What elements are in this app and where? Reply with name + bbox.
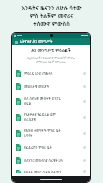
staticText: ሕገ መንግሥቱ ምዕራፎች — [12, 48, 90, 54]
button[interactable]: ምዕራፍ አንድ ጠቅላላ — [12, 67, 90, 80]
staticText: ክፍል — [24, 101, 32, 106]
staticText: እንዴትና ዜናንን ለሁሉ ሳተው — [6, 4, 97, 12]
staticText: የክልል ምክር ቤቶች ስልጣን — [24, 170, 62, 173]
staticText: መሠረታዊ መርሆች — [24, 84, 50, 89]
staticText: ተሰሙኛ ምውስስ — [6, 20, 97, 28]
button[interactable]: መሠረታዊ መርሆች — [12, 80, 90, 93]
button[interactable]: የክልል ምክር ቤቶች ስልጣን — [12, 167, 90, 176]
staticText: አባላት — [24, 133, 33, 138]
button[interactable]: የሕዝብ ተወካዮች ምክር ቤት — [12, 125, 90, 141]
staticText: የፌዴሬሽን ምክር ቤት — [24, 145, 52, 150]
staticText: ኢትዮጵያ ሕገ መንግሥት — [20, 39, 53, 44]
staticText: ስለ ሰብአዊ መብቶች ድንጋጌ — [24, 96, 61, 101]
button[interactable]: Open navigation menu — [14, 40, 18, 44]
staticText: የሕዝብ ተወካዮች ምክር ቤት — [24, 128, 61, 133]
button[interactable]: ስለሃገር መከላከያ ሰራዊት ሀላ — [12, 154, 90, 167]
button[interactable]: የፌዴሬሽን ምክር ቤት — [12, 141, 90, 154]
button[interactable]: የኢትዮጵያ የፌዴራል ዴሞ — [12, 109, 90, 125]
staticText: ክራሲያዊ — [24, 117, 36, 122]
staticText: የኢትዮጵያ የፌዴራል ዴሞ — [24, 112, 56, 117]
staticText: ስለሃገር መከላከያ ሰራዊት ሀላ — [24, 158, 63, 163]
staticText: ከዚህ በታች የተዘረዘሩት ምዕራፎች ናቸው። ለማንበብ ከታች ይምረ… — [12, 56, 90, 64]
staticText: ምስ ትልቹም መኖሪና — [6, 12, 97, 20]
staticText: ምዕራፍ አንድ ጠቅላላ — [24, 71, 53, 76]
button[interactable]: ስለ ሰብአዊ መብቶች ድንጋጌ — [12, 93, 90, 109]
